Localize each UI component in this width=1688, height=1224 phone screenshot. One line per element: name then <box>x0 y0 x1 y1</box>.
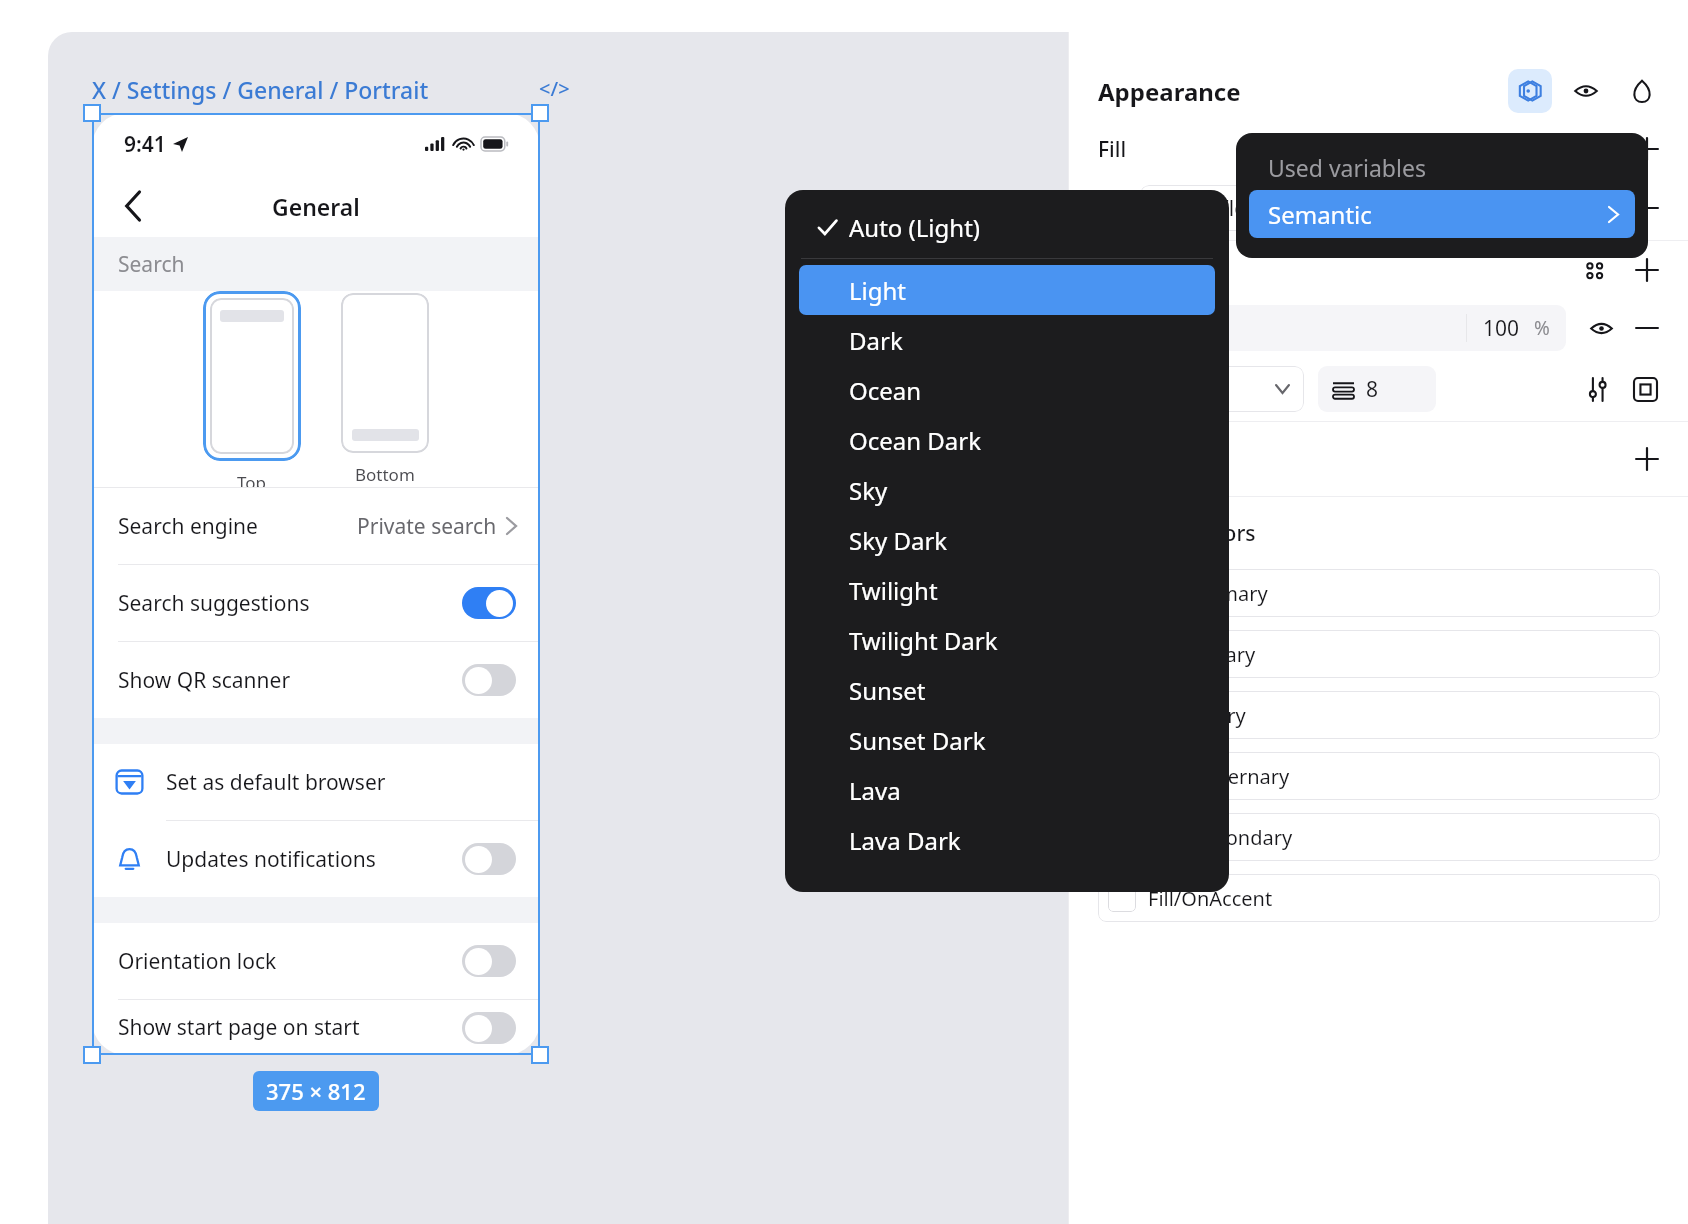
staticText: Lava <box>849 774 901 807</box>
button[interactable]: Toggle <box>462 843 516 875</box>
staticText: Search suggestions <box>118 589 310 618</box>
button[interactable]: Stroke visibility <box>1586 313 1616 343</box>
button[interactable]: Twilight <box>799 565 1215 615</box>
button[interactable]: Lava <box>799 765 1215 815</box>
staticText: Appearance <box>1098 75 1241 108</box>
button[interactable]: Text/Secondary <box>1098 813 1660 861</box>
button[interactable]: Toggle <box>462 945 516 977</box>
staticText: Used variables <box>1268 152 1426 183</box>
staticText: Lava Dark <box>849 824 961 857</box>
button[interactable]: Search engine <box>92 488 540 564</box>
button[interactable]: Remove fill <box>1634 195 1660 221</box>
button[interactable] <box>341 293 429 453</box>
button[interactable]: Stroke variables <box>1583 259 1606 282</box>
staticText: Sunset <box>849 674 926 707</box>
staticText: X / Settings / General / Portrait <box>92 74 429 105</box>
staticText: Semantic <box>1268 198 1372 231</box>
button[interactable]: Preview <box>1568 73 1604 109</box>
button[interactable]: Auto (Light) <box>799 202 1215 252</box>
staticText: Fill/OnAccent <box>1148 885 1273 912</box>
staticText: Top <box>237 471 267 487</box>
staticText: Orientation lock <box>118 947 277 976</box>
button[interactable]: Twilight Dark <box>799 615 1215 665</box>
button[interactable]: X / Settings / General / Portrait <box>92 74 429 105</box>
button[interactable]: Used variables <box>1236 144 1648 190</box>
staticText: Fill <box>1098 135 1127 164</box>
button[interactable]: Toggle <box>462 1012 516 1044</box>
button[interactable]: Orientation lock <box>92 923 540 999</box>
staticText: Dark <box>849 324 903 357</box>
staticText: Search <box>118 250 185 279</box>
staticText: Text/Primary <box>1148 580 1268 607</box>
staticText: 375 × 812 <box>266 1076 366 1106</box>
button[interactable]: Text/Primary <box>1098 569 1660 617</box>
button[interactable]: Add effect <box>1634 446 1660 472</box>
button[interactable]: Color <box>1624 73 1660 109</box>
button[interactable] <box>203 291 301 461</box>
button[interactable]: Advanced stroke <box>1582 374 1612 404</box>
staticText: Auto (Light) <box>849 211 981 244</box>
button[interactable]: Add fill <box>1634 136 1660 162</box>
button[interactable]: Fill/Primary <box>1098 630 1660 678</box>
button[interactable]: Sunset Dark <box>799 715 1215 765</box>
staticText: General <box>272 191 360 222</box>
staticText: Bottom <box>355 463 415 486</box>
button[interactable]: Lava Dark <box>799 815 1215 865</box>
staticText: Set as default browser <box>166 768 386 797</box>
staticText: Sunset Dark <box>849 724 986 757</box>
button[interactable]: Semantic <box>1249 190 1635 238</box>
button[interactable]: Show start page on start <box>92 1000 540 1055</box>
staticText: Light <box>849 274 907 307</box>
button[interactable]: Outside <box>1098 366 1304 412</box>
button[interactable]: Dark <box>799 315 1215 365</box>
staticText: Search engine <box>118 512 258 541</box>
staticText: Twilight <box>849 574 938 607</box>
button[interactable]: Fill/OnAccent <box>1098 874 1660 922</box>
staticText: Twilight Dark <box>849 624 998 657</box>
button[interactable]: 8 <box>1318 366 1436 412</box>
button[interactable]: Toggle <box>462 664 516 696</box>
button[interactable]: Show QR scanner <box>92 642 540 718</box>
staticText: Updates notifications <box>166 845 376 874</box>
button[interactable]: Updates notifications <box>92 821 540 897</box>
staticText: Fill/Primary <box>1148 641 1256 668</box>
staticText: 9:41 <box>124 130 166 159</box>
button[interactable]: E4E5EB <box>1139 305 1566 351</box>
staticText: Ocean <box>849 374 922 407</box>
staticText: Fill/Senary <box>1148 702 1246 729</box>
button[interactable]: Fill/Senary <box>1098 691 1660 739</box>
button[interactable]: Sunset <box>799 665 1215 715</box>
button[interactable]: Add stroke <box>1634 257 1660 283</box>
button[interactable]: Sky <box>799 465 1215 515</box>
button[interactable]: Stroke style <box>1630 374 1660 404</box>
button[interactable]: Code <box>536 70 572 106</box>
staticText: Private search <box>357 512 497 541</box>
button[interactable]: Ocean Dark <box>799 415 1215 465</box>
button[interactable]: Fill/Quaternary <box>1098 752 1660 800</box>
staticText: Ocean Dark <box>849 424 982 457</box>
staticText: 8 <box>1366 375 1379 404</box>
button[interactable]: Search <box>92 237 540 291</box>
button[interactable]: Layer/Floor-1 <box>1140 185 1610 231</box>
button[interactable]: Toggle <box>462 587 516 619</box>
button[interactable]: Light <box>799 265 1215 315</box>
button[interactable]: Set as default browser <box>92 744 540 820</box>
button[interactable]: Variables <box>1508 69 1552 113</box>
staticText: Layer/Floor-1 <box>1156 194 1287 223</box>
button[interactable]: Sky Dark <box>799 515 1215 565</box>
staticText: % <box>1534 315 1550 341</box>
button[interactable]: Remove stroke <box>1634 315 1660 341</box>
staticText: Stroke <box>1098 256 1163 285</box>
button[interactable]: Ocean <box>799 365 1215 415</box>
staticText: Show start page on start <box>118 1013 360 1042</box>
button[interactable]: Search suggestions <box>92 565 540 641</box>
staticText: Show QR scanner <box>118 666 291 695</box>
staticText: Fill/Quaternary <box>1148 763 1290 790</box>
staticText: Sky Dark <box>849 524 948 557</box>
button[interactable]: Back <box>108 181 158 231</box>
staticText: Text/Secondary <box>1148 824 1293 851</box>
staticText: 100 <box>1483 314 1520 343</box>
